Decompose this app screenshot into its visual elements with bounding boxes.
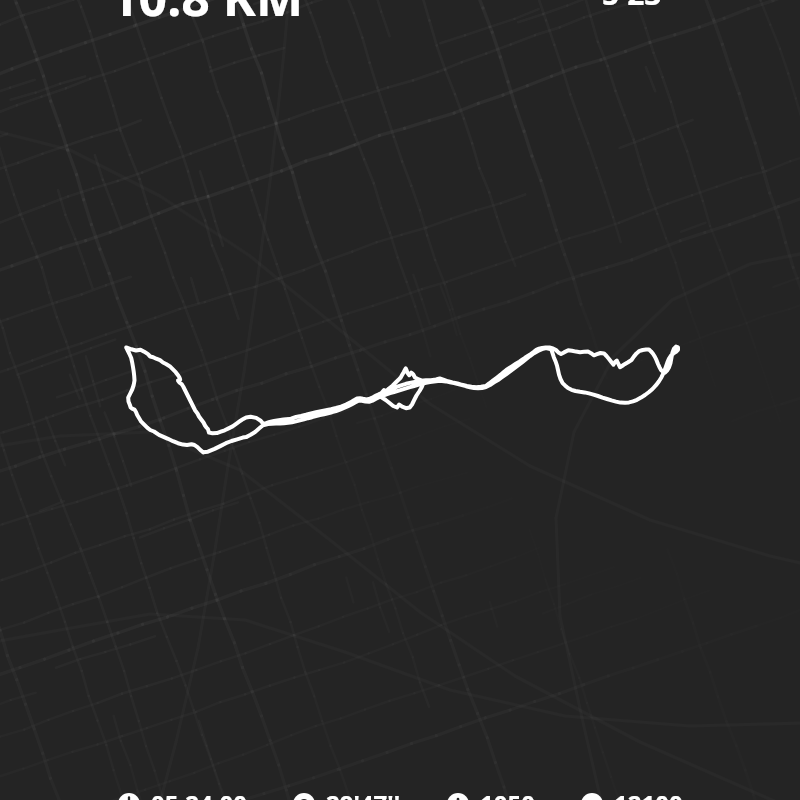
button[interactable]: 5'23'' [602, 0, 678, 14]
button[interactable]: Steps [581, 787, 683, 800]
button[interactable]: Pace [293, 787, 401, 800]
staticText: 05:24:00 [151, 787, 247, 800]
button[interactable]: 10.8 KM [110, 0, 304, 31]
staticText: 5'23'' [602, 0, 678, 14]
button[interactable]: Calories [447, 787, 535, 800]
staticText: 10.8 KM [110, 0, 304, 31]
staticText: 1050 [480, 787, 535, 800]
staticText: 12100 [614, 787, 683, 800]
staticText: 29'47'' [326, 787, 401, 800]
button[interactable]: Duration [118, 787, 247, 800]
